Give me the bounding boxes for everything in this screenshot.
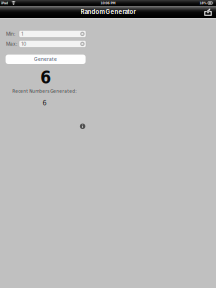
staticText: 1: [21, 31, 23, 37]
staticText: iPad: [1, 1, 8, 5]
staticText: Min:: [6, 31, 15, 37]
staticText: Generate: [34, 56, 57, 62]
staticText: 10: [21, 41, 26, 47]
staticText: 10:06 PM: [100, 1, 115, 5]
staticText: 18%: [200, 1, 207, 5]
staticText: 6: [42, 99, 46, 107]
button[interactable]: Share: [201, 6, 215, 18]
staticText: Max:: [6, 41, 17, 47]
button[interactable]: Generate: [6, 55, 86, 64]
button[interactable]: Info: [79, 123, 86, 130]
staticText: Recent Numbers Generated:: [12, 88, 76, 94]
staticText: Random Generator: [80, 8, 135, 15]
staticText: 6: [40, 67, 51, 87]
